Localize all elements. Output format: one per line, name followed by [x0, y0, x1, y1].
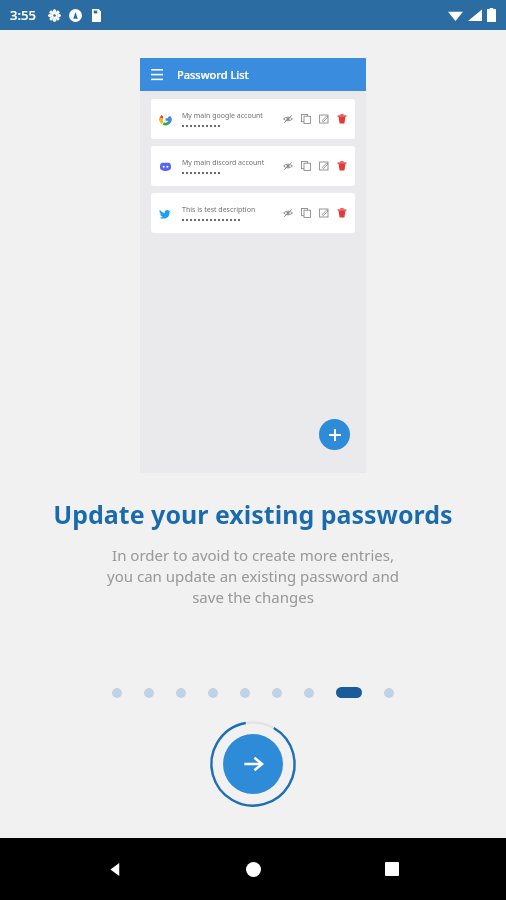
button[interactable]: My main discord account: [151, 146, 355, 186]
button[interactable]: Add password: [319, 419, 350, 450]
staticText: This is test description: [182, 205, 256, 215]
staticText: Update your existing passwords: [53, 497, 453, 531]
button[interactable]: Page 1: [112, 688, 122, 698]
button[interactable]: This is test description: [151, 193, 355, 233]
staticText: In order to avoid to create more entries…: [107, 545, 399, 608]
button[interactable]: Menu: [149, 67, 165, 83]
button[interactable]: Back: [91, 845, 139, 893]
staticText: My main discord account: [182, 158, 265, 168]
button[interactable]: Home: [229, 845, 277, 893]
button[interactable]: Delete password: [336, 160, 348, 172]
button[interactable]: Edit password: [318, 113, 330, 125]
button[interactable]: Page 7: [304, 688, 314, 698]
staticText: Password List: [177, 67, 249, 82]
button[interactable]: Page 3: [176, 688, 186, 698]
button[interactable]: Page 6: [272, 688, 282, 698]
button[interactable]: Page 4: [208, 688, 218, 698]
button[interactable]: Show password: [282, 160, 294, 172]
button[interactable]: Page 5: [240, 688, 250, 698]
button[interactable]: Recent apps: [368, 845, 416, 893]
button[interactable]: Edit password: [318, 207, 330, 219]
staticText: 3:55: [10, 6, 36, 24]
button[interactable]: Delete password: [336, 207, 348, 219]
button[interactable]: My main google account: [151, 99, 355, 139]
button[interactable]: Page 2: [144, 688, 154, 698]
button[interactable]: Show password: [282, 113, 294, 125]
button[interactable]: Page 9: [384, 688, 394, 698]
button[interactable]: Copy password: [300, 207, 312, 219]
button[interactable]: Show password: [282, 207, 294, 219]
button[interactable]: Copy password: [300, 113, 312, 125]
button[interactable]: Delete password: [336, 113, 348, 125]
button[interactable]: Page 8 of 9: [336, 687, 362, 698]
button[interactable]: Next: [209, 720, 297, 808]
button[interactable]: Edit password: [318, 160, 330, 172]
button[interactable]: Copy password: [300, 160, 312, 172]
staticText: My main google account: [182, 111, 263, 121]
